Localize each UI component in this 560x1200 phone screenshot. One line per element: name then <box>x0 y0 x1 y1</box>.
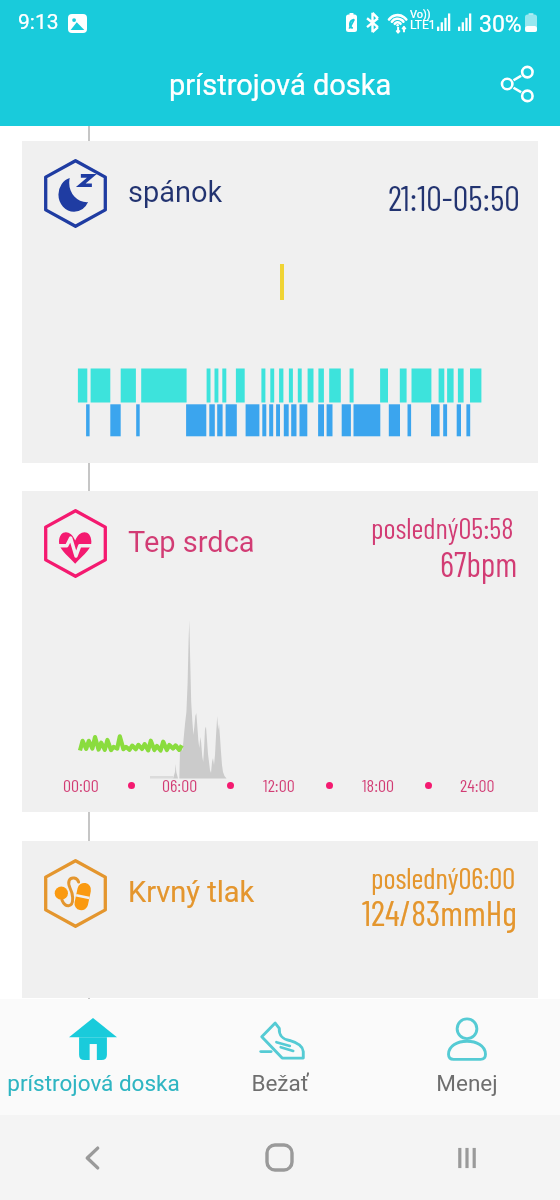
staticText: spánok <box>128 175 223 209</box>
button[interactable]: Krvný tlak <box>22 841 538 998</box>
staticText: 67bpm <box>440 543 518 584</box>
staticText: Menej <box>436 1070 498 1096</box>
button[interactable]: Back <box>0 1115 186 1200</box>
button[interactable]: Menej <box>373 999 560 1096</box>
button[interactable]: spánok <box>22 141 538 463</box>
staticText: Tep srdca <box>128 525 255 559</box>
staticText: Vo)) <box>410 8 431 21</box>
staticText: LTE1 <box>410 18 436 32</box>
staticText: Krvný tlak <box>128 875 255 909</box>
staticText: posledný06:00 <box>371 860 516 895</box>
staticText: 9:13 <box>18 10 59 35</box>
button[interactable]: Bežať <box>186 999 373 1096</box>
button[interactable]: Tep srdca <box>22 491 538 812</box>
button[interactable]: Home <box>186 1115 373 1200</box>
staticText: 124/83mmHg <box>362 891 517 933</box>
staticText: 30% <box>479 11 522 38</box>
staticText: prístrojová doska <box>169 68 392 102</box>
staticText: Bežať <box>251 1070 309 1096</box>
button[interactable]: Recent apps <box>373 1115 560 1200</box>
staticText: 06:00 <box>162 774 198 796</box>
staticText: prístrojová doska <box>7 1070 180 1096</box>
button[interactable]: prístrojová doska <box>0 999 186 1096</box>
staticText: 00:00 <box>63 774 99 796</box>
staticText: 21:10-05:50 <box>388 176 520 218</box>
staticText: posledný05:58 <box>371 510 514 545</box>
staticText: 18:00 <box>362 774 394 796</box>
button[interactable]: Share <box>492 58 544 110</box>
staticText: 24:00 <box>460 774 495 796</box>
staticText: 12:00 <box>263 774 295 796</box>
